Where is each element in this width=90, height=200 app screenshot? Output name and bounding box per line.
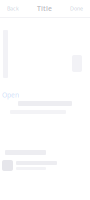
button[interactable]: Done [70,0,90,17]
staticText: Open [2,91,19,99]
staticText: Title [37,4,52,13]
button[interactable]: Back [0,0,19,17]
button[interactable] [0,160,90,171]
staticText: Done [70,5,83,12]
button[interactable]: Open [0,91,19,99]
staticText: Back [7,5,19,12]
